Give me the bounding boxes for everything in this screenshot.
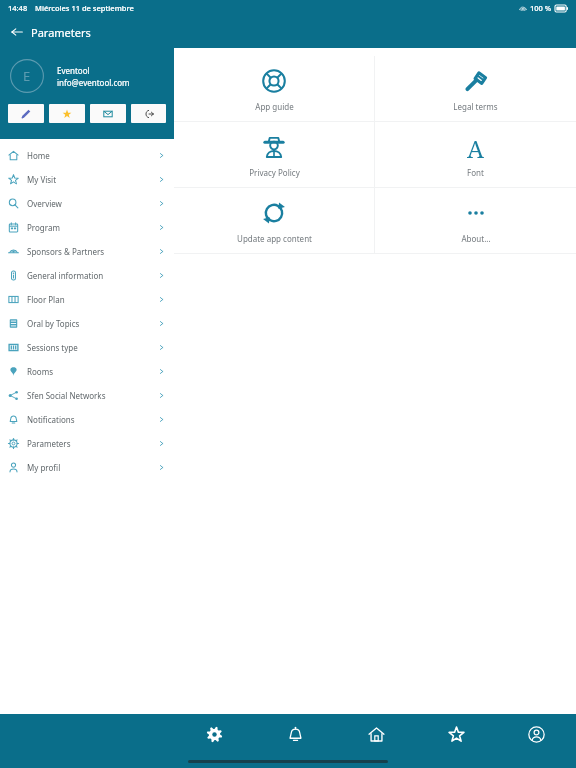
- button[interactable]: Parameters: [0, 431, 174, 455]
- button[interactable]: Notifications: [255, 714, 336, 754]
- staticText: Program: [27, 222, 60, 233]
- staticText: Overview: [27, 198, 62, 209]
- button[interactable]: Home: [0, 143, 174, 167]
- button[interactable]: My profil: [0, 455, 174, 479]
- button[interactable]: Profile: [496, 714, 576, 754]
- staticText: Rooms: [27, 366, 53, 377]
- button[interactable]: Home: [336, 714, 416, 754]
- button[interactable]: Parameters: [174, 714, 255, 754]
- staticText: Oral by Topics: [27, 318, 80, 329]
- staticText: Notifications: [27, 414, 75, 425]
- button[interactable]: Legal terms: [375, 56, 576, 121]
- staticText: Home: [27, 150, 50, 161]
- staticText: 14:48: [8, 3, 28, 13]
- button[interactable]: Notifications: [0, 407, 174, 431]
- staticText: Eventool: [57, 65, 90, 76]
- button[interactable]: My Visit: [0, 167, 174, 191]
- staticText: Parameters: [31, 25, 91, 40]
- button[interactable]: Edit profile: [8, 104, 44, 123]
- button[interactable]: Favourites: [416, 714, 496, 754]
- button[interactable]: Sponsors & Partners: [0, 239, 174, 263]
- staticText: App guide: [255, 101, 294, 112]
- button[interactable]: Overview: [0, 191, 174, 215]
- button[interactable]: About...: [375, 188, 576, 253]
- button[interactable]: Update app content: [174, 188, 374, 253]
- button[interactable]: General information: [0, 263, 174, 287]
- staticText: Privacy Policy: [249, 167, 300, 178]
- button[interactable]: Rooms: [0, 359, 174, 383]
- staticText: Parameters: [27, 438, 71, 449]
- staticText: About...: [461, 233, 491, 244]
- button[interactable]: Messages: [90, 104, 126, 123]
- button[interactable]: Favourites: [49, 104, 85, 123]
- staticText: Update app content: [237, 233, 312, 244]
- staticText: Sfen Social Networks: [27, 390, 106, 401]
- staticText: E: [23, 67, 31, 85]
- staticText: Floor Plan: [27, 294, 65, 305]
- button[interactable]: Oral by Topics: [0, 311, 174, 335]
- button[interactable]: Back: [8, 23, 26, 41]
- staticText: Sessions type: [27, 342, 78, 353]
- button[interactable]: Log out: [131, 104, 166, 123]
- staticText: A: [467, 132, 484, 162]
- button[interactable]: Floor Plan: [0, 287, 174, 311]
- staticText: Font: [467, 167, 484, 178]
- staticText: Miércoles 11 de septiembre: [35, 3, 134, 13]
- button[interactable]: Program: [0, 215, 174, 239]
- button[interactable]: App guide: [174, 56, 374, 121]
- staticText: Sponsors & Partners: [27, 246, 105, 257]
- button[interactable]: Sessions type: [0, 335, 174, 359]
- staticText: My Visit: [27, 174, 57, 185]
- staticText: 100 %: [530, 3, 552, 13]
- button[interactable]: Privacy Policy: [174, 122, 374, 187]
- button[interactable]: A: [375, 122, 576, 187]
- button[interactable]: Sfen Social Networks: [0, 383, 174, 407]
- staticText: My profil: [27, 462, 61, 473]
- staticText: General information: [27, 270, 104, 281]
- staticText: Legal terms: [453, 101, 498, 112]
- staticText: info@eventool.com: [57, 77, 130, 88]
